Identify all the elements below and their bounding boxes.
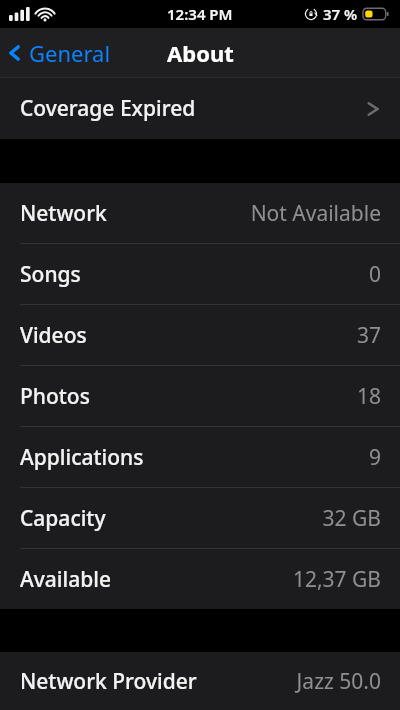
button[interactable]: Applications (0, 427, 400, 487)
other: Rotation lock (304, 7, 318, 21)
staticText: 0 (368, 260, 381, 289)
staticText: 37 (356, 321, 381, 350)
button[interactable]: Videos (0, 305, 400, 365)
staticText: Applications (20, 443, 144, 472)
staticText: Available (20, 565, 111, 594)
staticText: Videos (20, 321, 87, 350)
staticText: Jazz 50.0 (296, 667, 381, 696)
button[interactable]: Capacity (0, 488, 400, 548)
staticText: 37 % (323, 4, 358, 24)
button[interactable]: Network (0, 183, 400, 243)
staticText: Network Provider (20, 667, 197, 696)
staticText: About (167, 38, 234, 68)
staticText: Capacity (20, 504, 106, 533)
staticText: Photos (20, 382, 90, 411)
staticText: 18 (356, 382, 381, 411)
staticText: 9 (368, 443, 381, 472)
staticText: Songs (20, 260, 81, 289)
staticText: 12:34 PM (167, 4, 233, 24)
button[interactable]: Coverage Expired (0, 78, 400, 139)
staticText: Not Available (250, 199, 381, 228)
staticText: 32 GB (322, 504, 381, 533)
staticText: 12,37 GB (292, 565, 381, 594)
other: Battery 37 percent, low power mode (363, 7, 390, 21)
button[interactable]: Network Provider (0, 652, 400, 710)
staticText: Network (20, 199, 107, 228)
staticText: General (29, 38, 111, 68)
staticText: Coverage Expired (20, 94, 196, 123)
button[interactable]: Available (0, 549, 400, 609)
button[interactable]: Photos (0, 366, 400, 426)
button[interactable]: Songs (0, 244, 400, 304)
button[interactable]: General (0, 32, 121, 74)
